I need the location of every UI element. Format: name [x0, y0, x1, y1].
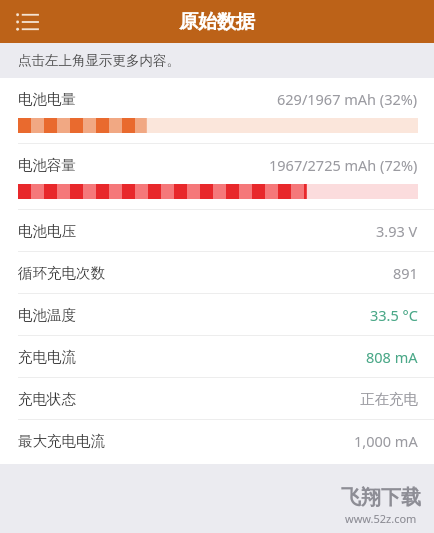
button[interactable]: 循环充电次数	[0, 252, 434, 293]
staticText: 原始数据	[179, 10, 255, 34]
button[interactable]: 充电状态	[0, 378, 434, 419]
staticText: 电池温度	[18, 306, 76, 324]
button[interactable]: 电池容量	[0, 144, 434, 209]
button[interactable]: 电池电量	[0, 78, 434, 143]
staticText: 飞翔下载	[341, 485, 421, 510]
staticText: 电池电压	[18, 222, 76, 240]
button[interactable]: Menu	[8, 2, 48, 42]
button[interactable]: 充电电流	[0, 336, 434, 377]
button[interactable]: 最大充电电流	[0, 420, 434, 461]
staticText: www.52z.com	[345, 511, 417, 526]
staticText: 629/1967 mAh (32%)	[277, 89, 418, 109]
button[interactable]: 电池温度	[0, 294, 434, 335]
staticText: 808 mA	[366, 347, 418, 367]
staticText: 最大充电电流	[18, 432, 105, 450]
staticText: 点击左上角显示更多内容。	[18, 52, 180, 69]
staticText: 1967/2725 mAh (72%)	[269, 155, 418, 175]
staticText: 循环充电次数	[18, 264, 105, 282]
staticText: 33.5 °C	[370, 305, 418, 325]
button[interactable]: 电池电压	[0, 210, 434, 251]
staticText: 电池容量	[18, 156, 76, 174]
staticText: 电池电量	[18, 90, 76, 108]
staticText: 1,000 mA	[354, 431, 418, 451]
staticText: 充电电流	[18, 348, 76, 366]
button[interactable]: 点击左上角显示更多内容。	[0, 43, 434, 78]
staticText: 正在充电	[360, 390, 418, 408]
staticText: 891	[393, 263, 418, 283]
staticText: 3.93 V	[376, 221, 418, 241]
staticText: 充电状态	[18, 390, 76, 408]
